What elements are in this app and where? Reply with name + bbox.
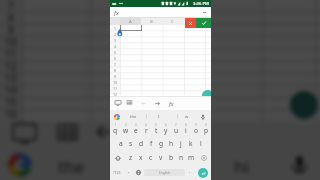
button[interactable]: , (124, 165, 133, 180)
staticText: 5 (155, 123, 157, 127)
button[interactable]: the (122, 110, 144, 123)
staticText: 8 (114, 68, 117, 73)
button[interactable]: v (156, 150, 166, 165)
staticText: 15 (5, 95, 17, 107)
button[interactable]: 6 (161, 122, 171, 136)
staticText: B (150, 19, 153, 25)
staticText: 3 (135, 123, 137, 127)
staticText: m (188, 153, 195, 162)
button[interactable]: 7 (171, 122, 181, 136)
button[interactable]: Google search (113, 113, 120, 120)
staticText: x (139, 153, 143, 162)
button[interactable]: Change language (133, 165, 144, 180)
staticText: s (129, 139, 133, 148)
button[interactable]: ?123 (110, 165, 124, 180)
button[interactable]: 4 (141, 122, 151, 136)
button[interactable]: g (156, 136, 166, 150)
button[interactable]: k (186, 136, 196, 150)
button[interactable]: d (136, 136, 146, 150)
button[interactable]: x (136, 150, 146, 165)
staticText: y (164, 126, 168, 135)
button[interactable]: s (126, 136, 136, 150)
button[interactable]: 1 (110, 122, 121, 136)
staticText: 8 (8, 11, 14, 23)
staticText: r (145, 126, 148, 135)
staticText: 7 (175, 123, 177, 127)
button[interactable]: Next (154, 100, 160, 106)
staticText: hi (234, 155, 249, 178)
button[interactable]: m (186, 150, 196, 165)
button[interactable]: fx (110, 7, 211, 18)
button[interactable]: New sheet (202, 90, 211, 101)
button[interactable]: w (178, 110, 196, 123)
button[interactable]: 3 (131, 122, 141, 136)
staticText: 10 (5, 35, 17, 47)
button[interactable]: Voice input (199, 113, 207, 121)
button[interactable]: A (120, 18, 141, 25)
button[interactable]: Enter (198, 168, 208, 178)
staticText: 9 (195, 123, 197, 127)
staticText: 13 (113, 97, 118, 102)
staticText: v (159, 153, 163, 162)
button[interactable]: n (176, 150, 186, 165)
button[interactable]: Cancel (185, 18, 196, 28)
button[interactable]: Backspace (196, 150, 211, 165)
button[interactable]: English (144, 169, 185, 176)
staticText: 3 (114, 38, 117, 43)
staticText: j (180, 139, 182, 148)
staticText: 2 (114, 32, 117, 37)
staticText: h (169, 139, 174, 148)
staticText: 2 (125, 123, 127, 127)
staticText: g (159, 139, 164, 148)
button[interactable]: c (146, 150, 156, 165)
button[interactable]: l (196, 136, 206, 150)
staticText: C (171, 19, 174, 25)
button[interactable]: 9 (191, 122, 201, 136)
staticText: n (179, 153, 184, 162)
button[interactable]: 0 (201, 122, 211, 136)
button[interactable]: Formula (167, 99, 175, 107)
staticText: 14 (5, 83, 17, 95)
button[interactable]: 2 (121, 122, 131, 136)
staticText: e (134, 126, 138, 135)
staticText: 3:36 PM (193, 1, 209, 7)
button[interactable]: C (162, 18, 183, 25)
button[interactable]: z (126, 150, 136, 165)
staticText: o (194, 126, 198, 135)
staticText: 7 (114, 62, 117, 67)
button[interactable]: Shift (110, 150, 126, 165)
button[interactable]: Confirm (196, 18, 211, 28)
staticText: fx (169, 100, 174, 107)
button[interactable]: b (166, 150, 176, 165)
staticText: 6 (114, 56, 117, 61)
staticText: k (189, 139, 193, 148)
staticText: w (185, 114, 189, 120)
button[interactable]: 5 (151, 122, 161, 136)
staticText: 12 (113, 92, 118, 97)
staticText: the (58, 155, 85, 178)
button[interactable]: B (141, 18, 162, 25)
button[interactable]: h (166, 136, 176, 150)
staticText: 0 (205, 123, 207, 127)
button[interactable]: 8 (181, 122, 191, 136)
button[interactable]: a (116, 136, 126, 150)
button[interactable]: j (176, 136, 186, 150)
staticText: English (159, 171, 170, 175)
staticText: t (155, 126, 158, 135)
staticText: 1 (114, 26, 117, 31)
staticText: c (149, 153, 153, 162)
button[interactable]: I (148, 110, 170, 123)
staticText: 5 (114, 50, 117, 55)
button[interactable]: Table (126, 99, 133, 106)
staticText: the (130, 114, 137, 120)
button[interactable]: . (185, 165, 195, 180)
button[interactable]: Show sheet (114, 99, 121, 106)
button[interactable]: D (183, 18, 204, 25)
staticText: l (200, 139, 202, 148)
button[interactable]: f (146, 136, 156, 150)
